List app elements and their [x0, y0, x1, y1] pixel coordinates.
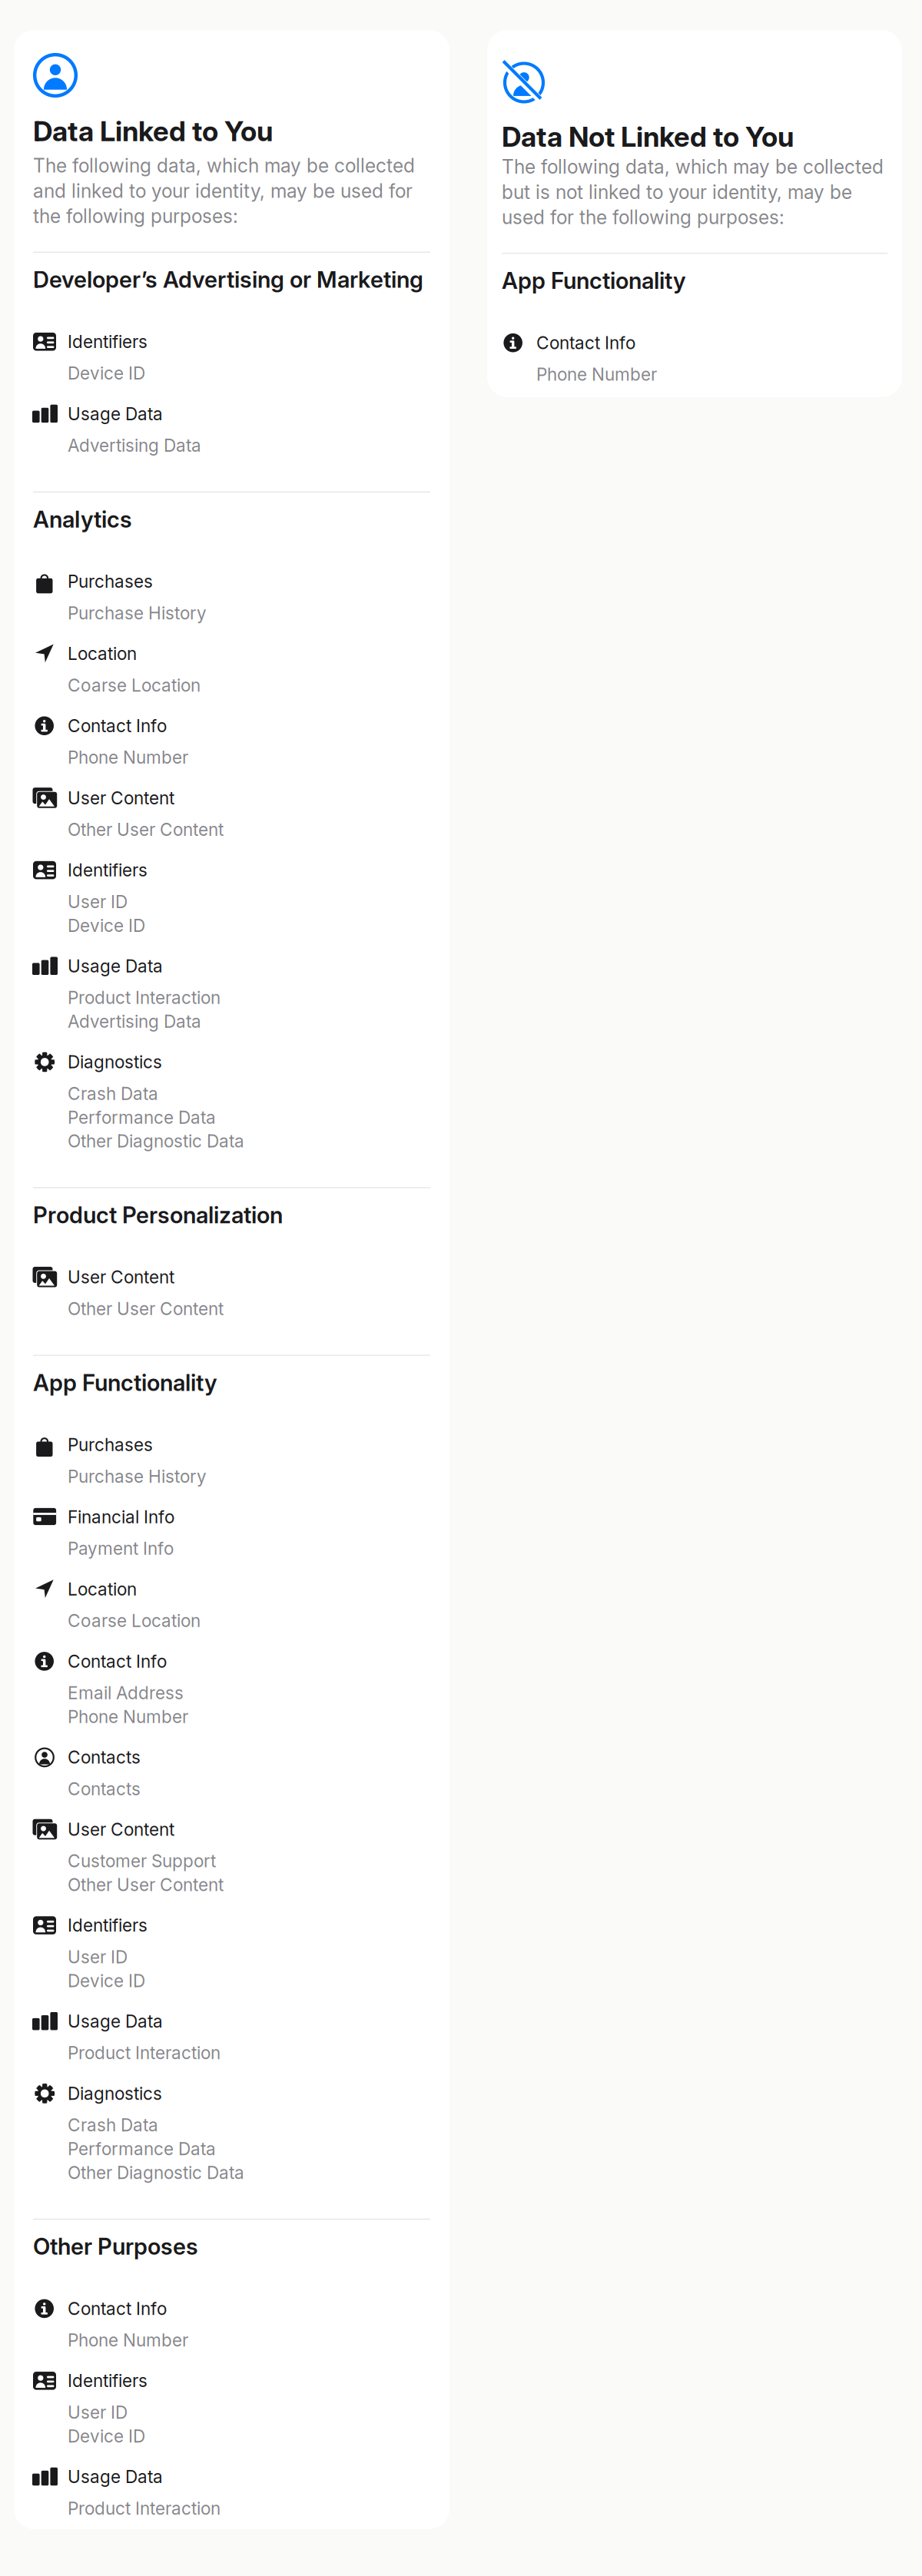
staticText: Analytics: [33, 506, 132, 533]
staticText: User ID: [68, 891, 128, 912]
staticText: Developer’s Advertising or Marketing: [33, 266, 423, 293]
button[interactable]: Purchases: [33, 571, 430, 624]
staticText: Other Purposes: [33, 2233, 198, 2260]
staticText: Other Diagnostic Data: [68, 1131, 244, 1152]
staticText: The following data, which may be collect…: [33, 154, 415, 228]
staticText: Phone Number: [536, 364, 657, 385]
button[interactable]: User Content: [33, 787, 430, 840]
staticText: Usage Data: [68, 2466, 163, 2487]
staticText: Data Not Linked to You: [502, 120, 794, 153]
button[interactable]: Identifiers: [33, 331, 430, 384]
button[interactable]: Usage Data: [33, 2466, 430, 2519]
staticText: Other User Content: [68, 819, 224, 840]
staticText: Contacts: [68, 1747, 141, 1768]
staticText: Data Linked to You: [33, 114, 273, 148]
staticText: Advertising Data: [68, 435, 201, 456]
button[interactable]: Usage Data: [33, 2011, 430, 2063]
button[interactable]: Financial Info: [33, 1506, 430, 1559]
staticText: Contact Info: [536, 332, 635, 353]
button[interactable]: Identifiers: [33, 1915, 430, 1991]
staticText: User ID: [68, 2402, 128, 2423]
staticText: Product Interaction: [68, 2042, 221, 2063]
staticText: Usage Data: [68, 403, 163, 424]
staticText: Phone Number: [68, 747, 188, 768]
staticText: Phone Number: [68, 2330, 188, 2351]
staticText: Device ID: [68, 363, 145, 384]
button[interactable]: Diagnostics: [33, 1052, 430, 1152]
staticText: Product Interaction: [68, 2498, 221, 2519]
staticText: Device ID: [68, 2426, 145, 2447]
button[interactable]: Contact Info: [502, 332, 887, 385]
staticText: Email Address: [68, 1682, 184, 1703]
staticText: Location: [68, 1579, 137, 1600]
button[interactable]: User Content: [33, 1267, 430, 1319]
button[interactable]: Contact Info: [33, 715, 430, 768]
staticText: User Content: [68, 1267, 174, 1288]
staticText: Payment Info: [68, 1538, 174, 1559]
staticText: Device ID: [68, 915, 145, 936]
button[interactable]: Identifiers: [33, 2370, 430, 2447]
staticText: Financial Info: [68, 1506, 174, 1527]
button[interactable]: Identifiers: [33, 860, 430, 936]
staticText: Crash Data: [68, 1083, 158, 1104]
staticText: Other User Content: [68, 1874, 224, 1895]
staticText: App Functionality: [33, 1369, 217, 1396]
staticText: Advertising Data: [68, 1011, 201, 1032]
staticText: Crash Data: [68, 2115, 158, 2136]
staticText: User Content: [68, 1819, 174, 1840]
staticText: Purchases: [68, 571, 153, 592]
button[interactable]: Location: [33, 1579, 430, 1631]
staticText: Contacts: [68, 1778, 141, 1799]
staticText: Product Personalization: [33, 1201, 283, 1229]
staticText: Purchase History: [68, 602, 207, 624]
staticText: Product Interaction: [68, 987, 221, 1008]
staticText: Diagnostics: [68, 2083, 162, 2104]
button[interactable]: Usage Data: [33, 403, 430, 456]
staticText: Diagnostics: [68, 1052, 162, 1073]
staticText: Phone Number: [68, 1706, 188, 1727]
button[interactable]: Contact Info: [33, 1651, 430, 1727]
staticText: Identifiers: [68, 1915, 148, 1936]
staticText: Usage Data: [68, 2011, 163, 2032]
staticText: User Content: [68, 787, 174, 808]
staticText: Contact Info: [68, 1651, 167, 1672]
button[interactable]: Location: [33, 643, 430, 696]
staticText: Coarse Location: [68, 1610, 201, 1631]
button[interactable]: Purchases: [33, 1434, 430, 1487]
staticText: The following data, which may be collect…: [502, 155, 884, 229]
staticText: Device ID: [68, 1970, 145, 1991]
button[interactable]: Diagnostics: [33, 2083, 430, 2183]
staticText: Usage Data: [68, 956, 163, 977]
staticText: Contact Info: [68, 2298, 167, 2319]
button[interactable]: Contacts: [33, 1747, 430, 1799]
staticText: Other Diagnostic Data: [68, 2162, 244, 2183]
staticText: Purchase History: [68, 1466, 207, 1487]
button[interactable]: User Content: [33, 1819, 430, 1895]
staticText: Coarse Location: [68, 675, 201, 696]
staticText: Identifiers: [68, 860, 148, 881]
button[interactable]: Usage Data: [33, 956, 430, 1032]
staticText: Identifiers: [68, 331, 148, 352]
staticText: Contact Info: [68, 715, 167, 736]
staticText: Location: [68, 643, 137, 664]
staticText: App Functionality: [502, 267, 686, 294]
staticText: Performance Data: [68, 1107, 216, 1128]
button[interactable]: Contact Info: [33, 2298, 430, 2351]
staticText: Customer Support: [68, 1850, 216, 1871]
staticText: Other User Content: [68, 1298, 224, 1319]
staticText: Performance Data: [68, 2138, 216, 2159]
staticText: User ID: [68, 1946, 128, 1967]
staticText: Identifiers: [68, 2370, 148, 2391]
staticText: Purchases: [68, 1434, 153, 1455]
